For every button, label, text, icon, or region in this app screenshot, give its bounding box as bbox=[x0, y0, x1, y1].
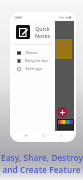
staticText: Easy, Share, Destroy bbox=[1, 152, 83, 163]
button[interactable]: Create note bbox=[57, 107, 67, 117]
staticText: Notes bbox=[25, 50, 38, 56]
button[interactable]: Home bbox=[38, 131, 48, 140]
button[interactable]: Notes bbox=[17, 49, 53, 57]
button[interactable]: Back bbox=[20, 131, 30, 140]
button[interactable]: Settings bbox=[17, 65, 53, 73]
button[interactable]: Quick Notes bbox=[16, 21, 52, 43]
button[interactable]: Recents bbox=[56, 131, 66, 140]
staticText: Recycle bin bbox=[25, 58, 48, 64]
button[interactable]: Recycle bin bbox=[17, 57, 53, 65]
staticText: Settings bbox=[25, 66, 42, 72]
staticText: and Create Feature bbox=[2, 164, 81, 175]
button[interactable] bbox=[57, 119, 74, 130]
staticText: Quick Notes bbox=[33, 25, 52, 39]
